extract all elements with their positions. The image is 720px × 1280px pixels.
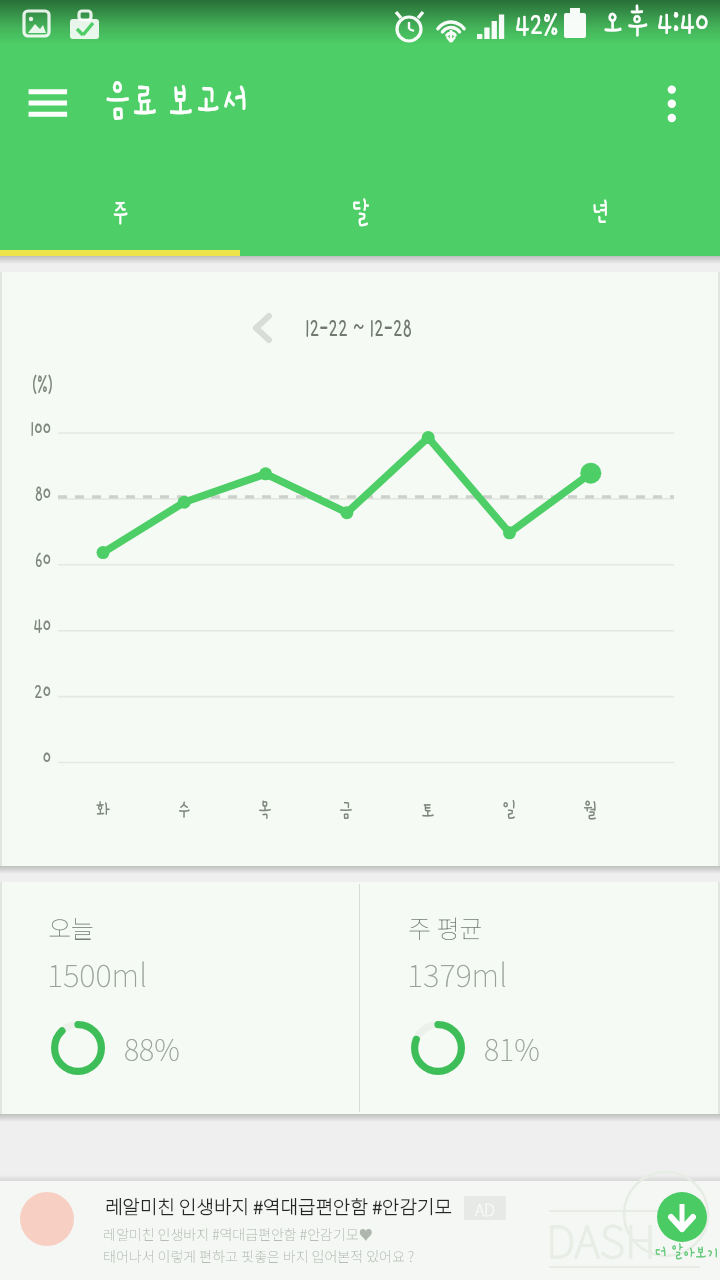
staticText: AD <box>475 1197 495 1220</box>
button[interactable]: 주 <box>0 170 240 250</box>
staticText: 레알미친 인생바지 #역대급편안함 #안감기모 <box>105 1192 452 1220</box>
staticText: 0 <box>11 744 51 770</box>
staticText: 오후 4:40 <box>601 4 709 40</box>
staticText: 100 <box>11 415 51 441</box>
staticText: 40 <box>11 612 51 638</box>
staticText: 토 <box>408 799 448 821</box>
staticText: (%) <box>32 368 53 397</box>
staticText: 12-22 ~ 12-28 <box>305 313 412 343</box>
staticText: 월 <box>570 799 610 821</box>
staticText: 일 <box>489 799 529 821</box>
button[interactable]: Download <box>657 1192 707 1242</box>
staticText: 레알미친 인생바지 #역대급편안함 #안감기모♥ <box>103 1224 373 1244</box>
button[interactable]: 달 <box>240 170 480 250</box>
staticText: 화 <box>83 799 123 821</box>
staticText: 년 <box>591 198 610 229</box>
staticText: 태어나서 이렇게 편하고 핏좋은 바지 입어본적 있어요 ? <box>103 1246 415 1266</box>
button[interactable]: 오늘 <box>0 882 359 1114</box>
button[interactable]: 년 <box>480 170 720 250</box>
button[interactable]: Menu <box>18 70 80 142</box>
button[interactable]: 레알미친 인생바지 #역대급편안함 #안감기모 <box>0 1181 720 1280</box>
staticText: 달 <box>351 198 370 229</box>
staticText: 81% <box>484 1027 540 1069</box>
staticText: DASH <box>546 1207 656 1271</box>
staticText: 금 <box>326 799 366 821</box>
staticText: 1379ml <box>407 951 508 996</box>
staticText: 88% <box>124 1027 180 1069</box>
staticText: 목 <box>245 799 285 821</box>
staticText: 20 <box>11 678 51 704</box>
button[interactable]: More options <box>646 70 698 142</box>
staticText: 주 <box>111 198 130 229</box>
button[interactable]: 주 평균 <box>360 882 720 1114</box>
staticText: 음료 보고서 <box>104 75 250 123</box>
button[interactable]: Previous week <box>240 306 284 350</box>
staticText: 1500ml <box>47 951 148 996</box>
staticText: 80 <box>11 480 51 506</box>
staticText: 주 평균 <box>408 909 483 945</box>
staticText: 오늘 <box>48 909 95 945</box>
staticText: 42% <box>515 4 558 42</box>
staticText: 더 알아보기 <box>655 1243 720 1261</box>
staticText: 수 <box>164 799 204 821</box>
staticText: 60 <box>11 546 51 572</box>
